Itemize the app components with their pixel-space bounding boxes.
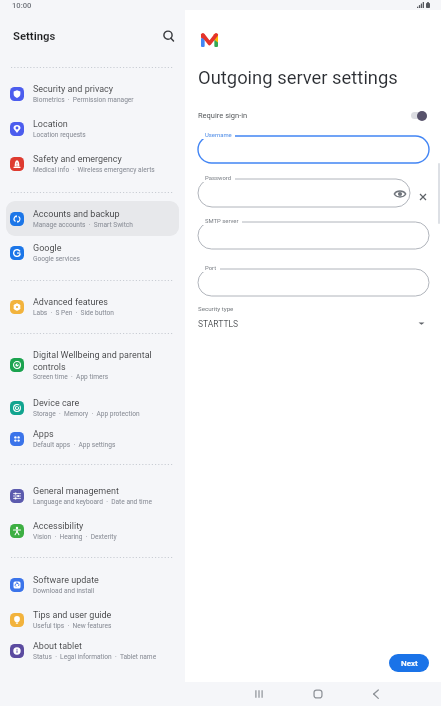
staticText: Location (33, 119, 68, 130)
button[interactable]: Digital Wellbeing and parental controls (6, 341, 179, 389)
staticText: Username (205, 132, 232, 139)
button[interactable]: Google (6, 235, 179, 270)
button[interactable]: Clear (417, 191, 429, 203)
button[interactable]: Software update (6, 567, 179, 602)
button[interactable]: Search (159, 26, 178, 45)
button[interactable]: Back (363, 682, 389, 706)
staticText: 10:00 (12, 1, 32, 10)
staticText: Outgoing server settings (198, 67, 398, 89)
button[interactable]: Tips and user guide (6, 602, 179, 637)
staticText: Language and keyboard · Date and time (33, 498, 153, 506)
staticText: Biometrics · Permission manager (33, 96, 134, 104)
staticText: Manage accounts · Smart Switch (33, 221, 133, 229)
staticText: SMTP server (205, 218, 239, 225)
staticText: Accessibility (33, 521, 84, 532)
button[interactable]: Accounts and backup (6, 201, 179, 236)
staticText: Security type (198, 305, 234, 312)
button[interactable]: Advanced features (6, 289, 179, 324)
staticText: Digital Wellbeing and parental controls (33, 350, 152, 372)
staticText: Password (205, 175, 232, 182)
staticText: Accounts and backup (33, 209, 120, 220)
button[interactable]: Require sign-in toggle (411, 112, 427, 119)
staticText: Next (401, 659, 418, 668)
staticText: Settings (13, 30, 56, 43)
staticText: Tips and user guide (33, 610, 112, 621)
staticText: Safety and emergency (33, 154, 122, 165)
staticText: Vision · Hearing · Dexterity (33, 533, 117, 541)
button[interactable]: Security and privacy (6, 76, 179, 111)
staticText: Useful tips · New features (33, 622, 112, 630)
button[interactable]: Safety and emergency (6, 146, 179, 181)
staticText: General management (33, 486, 119, 497)
button[interactable]: Show password (394, 188, 406, 200)
staticText: Labs · S Pen · Side button (33, 309, 114, 317)
button[interactable]: Apps (6, 421, 179, 456)
button[interactable]: Location (6, 111, 179, 146)
button[interactable]: Home (305, 682, 331, 706)
staticText: Software update (33, 575, 99, 586)
staticText: Status · Legal information · Tablet name (33, 653, 157, 661)
button[interactable]: Recents (246, 682, 272, 706)
button[interactable]: Accessibility (6, 513, 179, 548)
staticText: Storage · Memory · App protection (33, 410, 140, 418)
staticText: Screen time · App timers (33, 373, 109, 381)
staticText: Google services (33, 255, 80, 263)
staticText: Download and install (33, 587, 95, 595)
staticText: Require sign-in (198, 111, 248, 120)
staticText: Security and privacy (33, 84, 114, 95)
staticText: Default apps · App settings (33, 441, 116, 449)
button[interactable]: General management (6, 478, 179, 513)
staticText: Port (205, 265, 217, 272)
staticText: Apps (33, 429, 54, 440)
staticText: Medical info · Wireless emergency alerts (33, 166, 155, 174)
staticText: Location requests (33, 131, 86, 139)
button[interactable]: About tablet (6, 633, 179, 668)
staticText: STARTTLS (198, 319, 239, 329)
button[interactable]: Device care (6, 390, 179, 425)
staticText: About tablet (33, 641, 82, 652)
staticText: Google (33, 243, 62, 254)
staticText: Device care (33, 398, 80, 409)
staticText: Advanced features (33, 297, 108, 308)
button[interactable]: Security type dropdown (415, 317, 427, 329)
button[interactable]: Next (389, 654, 429, 672)
